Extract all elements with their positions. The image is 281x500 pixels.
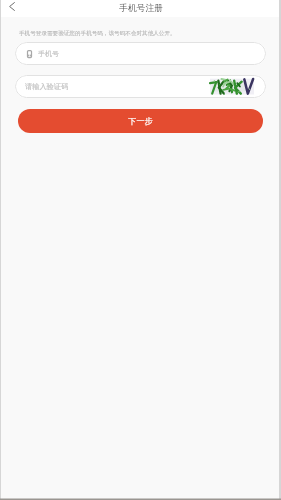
staticText: 手机号 bbox=[38, 49, 59, 58]
button[interactable]: 请输入验证码 bbox=[15, 75, 266, 98]
button[interactable]: 手机号 bbox=[15, 42, 266, 65]
staticText: 下一步 bbox=[128, 116, 153, 126]
staticText: 请输入验证码 bbox=[25, 82, 69, 91]
staticText: 手机号登录需要验证您的手机号码，该号码不会对其他人公开。 bbox=[19, 30, 176, 37]
staticText: 手机号注册 bbox=[119, 3, 163, 14]
button[interactable]: Refresh captcha bbox=[210, 78, 254, 95]
button[interactable]: Back bbox=[0, 0, 24, 17]
button[interactable]: 下一步 bbox=[18, 109, 263, 133]
